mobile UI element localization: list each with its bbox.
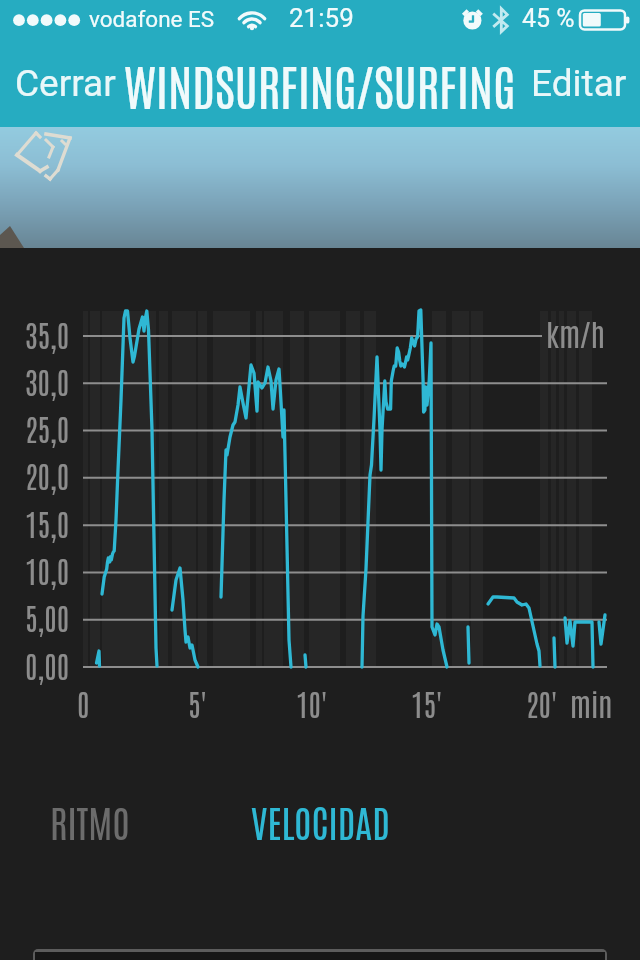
staticText: 15' <box>411 683 443 722</box>
staticText: min <box>570 683 613 722</box>
staticText: RITMO <box>50 796 130 845</box>
staticText: 15,0 <box>25 503 70 542</box>
staticText: 5' <box>188 683 207 722</box>
button[interactable] <box>33 949 607 960</box>
staticText: 30,0 <box>25 361 70 400</box>
button[interactable]: RITMO <box>28 781 152 859</box>
staticText: 0 <box>77 683 90 722</box>
staticText: 35,0 <box>25 314 70 353</box>
staticText: 25,0 <box>25 408 70 447</box>
staticText: WINDSURFING/SURFING <box>124 52 516 115</box>
button[interactable]: Cerrar <box>8 52 122 114</box>
staticText: 45 % <box>522 4 575 33</box>
staticText: 20' <box>526 683 558 722</box>
staticText: 21:59 <box>289 3 354 33</box>
staticText: km/h <box>546 313 605 352</box>
staticText: Editar <box>531 62 627 105</box>
staticText: 20,0 <box>25 455 70 494</box>
staticText: Cerrar <box>15 62 116 105</box>
button[interactable]: VELOCIDAD <box>233 781 408 859</box>
staticText: vodafone ES <box>89 6 215 32</box>
button[interactable]: Editar <box>528 52 630 114</box>
staticText: 5,00 <box>25 597 70 636</box>
staticText: 10,0 <box>25 550 70 589</box>
staticText: 0,00 <box>25 645 70 684</box>
staticText: 10' <box>296 683 328 722</box>
staticText: VELOCIDAD <box>251 796 390 845</box>
